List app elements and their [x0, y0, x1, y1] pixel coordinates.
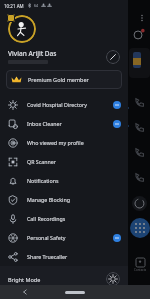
button[interactable]: Call	[133, 171, 146, 184]
staticText: 64	[34, 3, 39, 8]
staticText: Bright Mode	[8, 276, 106, 283]
button[interactable]: Covid Hospital Directory	[0, 95, 128, 114]
staticText: 10:21 AM	[4, 3, 24, 9]
button[interactable]: Call	[133, 96, 146, 109]
button[interactable]: Blocked	[133, 28, 145, 40]
button[interactable]: More options	[137, 13, 147, 23]
button[interactable]: QR Scanner	[0, 152, 128, 171]
button[interactable]: Share Truecaller	[0, 247, 128, 266]
staticText: QR Scanner	[27, 158, 121, 165]
staticText: Contacts	[134, 268, 147, 272]
button[interactable]: Call	[133, 121, 146, 134]
staticText: Manage Blocking	[27, 196, 121, 203]
button[interactable]: Home	[50, 285, 100, 299]
button[interactable]: Back	[0, 285, 50, 299]
button[interactable]: Contacts	[130, 258, 150, 272]
button[interactable]: Personal Safety	[0, 228, 128, 247]
staticText: Vivian Arijit Das	[8, 49, 57, 58]
staticText: Inbox Cleaner	[27, 120, 113, 127]
staticText: Who viewed my profile	[27, 139, 121, 146]
button[interactable]: Inbox Cleaner	[0, 114, 128, 133]
button[interactable]: Manage Blocking	[0, 190, 128, 209]
staticText: Share Truecaller	[27, 253, 121, 260]
button[interactable]: Notifications	[0, 171, 128, 190]
staticText: Call Recordings	[27, 215, 121, 222]
button[interactable]: New call	[132, 196, 147, 211]
button[interactable]: Who viewed my profile	[0, 133, 128, 152]
other: Toggle bright mode	[106, 272, 120, 286]
button[interactable]: Bright Mode	[0, 266, 128, 292]
button[interactable]: Call	[133, 146, 146, 159]
button[interactable]: Dialpad	[130, 218, 150, 238]
staticText: Personal Safety	[27, 234, 113, 241]
staticText: Premium Gold member	[28, 76, 89, 83]
button[interactable]: Profile photo	[8, 15, 36, 43]
button[interactable]: Premium Gold member	[6, 70, 122, 89]
button[interactable]: Call Recordings	[0, 209, 128, 228]
staticText: Notifications	[27, 177, 121, 184]
button[interactable]: Edit profile	[106, 50, 120, 64]
staticText: Covid Hospital Directory	[27, 101, 113, 108]
